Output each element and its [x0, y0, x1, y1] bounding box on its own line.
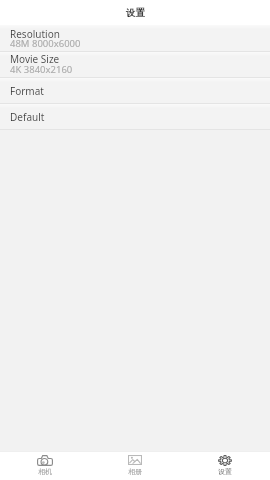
- button[interactable]: Settings: [180, 452, 270, 480]
- staticText: 4K 3840x2160: [10, 63, 73, 76]
- staticText: 相册: [128, 467, 142, 476]
- staticText: Default: [10, 110, 45, 124]
- button[interactable]: Album: [90, 452, 180, 480]
- button[interactable]: Format: [0, 77, 270, 103]
- button[interactable]: Camera: [0, 452, 90, 480]
- button[interactable]: Default: [0, 103, 270, 129]
- staticText: 设置: [218, 467, 232, 476]
- staticText: Movie Size: [10, 52, 60, 66]
- staticText: Format: [10, 84, 44, 98]
- button[interactable]: Movie Size: [0, 51, 270, 77]
- staticText: Resolution: [10, 27, 60, 41]
- staticText: 48M 8000x6000: [10, 37, 81, 50]
- button[interactable]: Resolution: [0, 25, 270, 51]
- staticText: 设置: [126, 7, 145, 19]
- staticText: 相机: [38, 467, 52, 476]
